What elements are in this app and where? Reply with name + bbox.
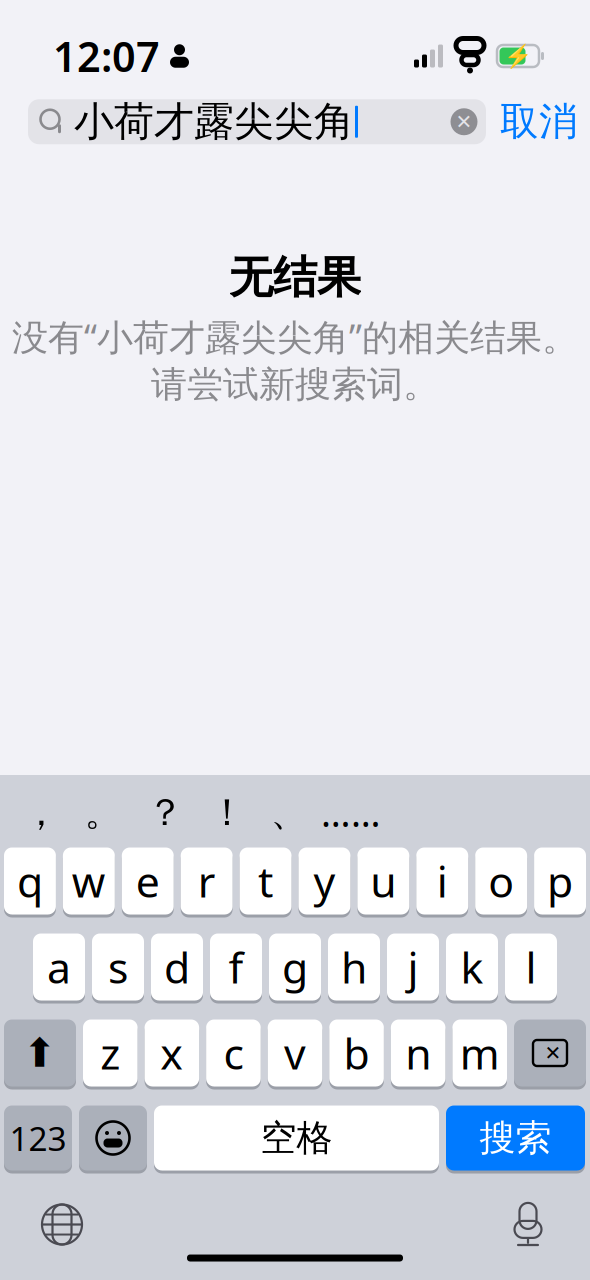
staticText: x bbox=[160, 1025, 183, 1081]
staticText: d bbox=[164, 939, 190, 995]
staticText: 无结果 bbox=[229, 250, 361, 304]
staticText: s bbox=[108, 939, 128, 995]
button[interactable]: 123 bbox=[4, 1105, 72, 1173]
button[interactable]: m bbox=[452, 1019, 507, 1089]
button[interactable]: p bbox=[534, 847, 586, 917]
button[interactable]: Clear text bbox=[442, 100, 486, 144]
staticText: w bbox=[72, 853, 106, 909]
staticText: 小荷才露尖尖角 bbox=[74, 97, 354, 146]
staticText: 空格 bbox=[260, 1116, 332, 1160]
staticText: ⚡ bbox=[504, 43, 532, 69]
button[interactable]: b bbox=[329, 1019, 384, 1089]
staticText: j bbox=[407, 939, 418, 995]
button[interactable]: z bbox=[83, 1019, 138, 1089]
button[interactable]: f bbox=[210, 933, 262, 1003]
button[interactable]: r bbox=[181, 847, 233, 917]
staticText: z bbox=[100, 1025, 120, 1081]
button[interactable]: k bbox=[446, 933, 498, 1003]
staticText: e bbox=[136, 853, 160, 909]
staticText: 没有“小荷才露尖尖角”的相关结果。 bbox=[12, 312, 578, 360]
staticText: 123 bbox=[9, 1116, 66, 1160]
button[interactable]: ！ bbox=[196, 783, 258, 841]
button[interactable]: e bbox=[122, 847, 174, 917]
staticText: l bbox=[525, 939, 536, 995]
button[interactable]: 取消 bbox=[500, 98, 578, 145]
button[interactable]: x bbox=[145, 1019, 199, 1089]
button[interactable]: 搜索 bbox=[446, 1105, 585, 1173]
button[interactable]: 。 bbox=[72, 783, 134, 841]
staticText: o bbox=[488, 853, 514, 909]
staticText: ！ bbox=[208, 790, 245, 835]
staticText: m bbox=[460, 1025, 500, 1081]
button[interactable]: …… bbox=[320, 783, 382, 841]
button[interactable]: i bbox=[416, 847, 468, 917]
button[interactable]: Shift bbox=[4, 1019, 76, 1089]
button[interactable]: o bbox=[475, 847, 527, 917]
button[interactable]: ？ bbox=[134, 783, 196, 841]
button[interactable]: s bbox=[92, 933, 144, 1003]
staticText: 取消 bbox=[500, 98, 578, 145]
staticText: ✕ bbox=[455, 110, 472, 133]
staticText: …… bbox=[321, 788, 381, 837]
button[interactable]: ， bbox=[10, 783, 72, 841]
button[interactable]: Emoji bbox=[79, 1105, 147, 1173]
staticText: u bbox=[370, 853, 396, 909]
button[interactable]: u bbox=[357, 847, 409, 917]
staticText: 。 bbox=[84, 790, 121, 835]
staticText: i bbox=[437, 853, 448, 909]
staticText: ， bbox=[22, 790, 59, 835]
button[interactable]: Dictate bbox=[493, 1195, 563, 1253]
staticText: ⬆ bbox=[23, 1030, 57, 1076]
staticText: 、 bbox=[270, 790, 307, 835]
staticText: ？ bbox=[146, 790, 183, 835]
button[interactable]: Next keyboard bbox=[27, 1195, 97, 1253]
button[interactable]: g bbox=[269, 933, 321, 1003]
button[interactable]: n bbox=[391, 1019, 445, 1089]
staticText: r bbox=[198, 853, 216, 909]
button[interactable]: 、 bbox=[258, 783, 320, 841]
staticText: 搜索 bbox=[479, 1116, 551, 1160]
button[interactable]: d bbox=[151, 933, 203, 1003]
staticText: q bbox=[17, 853, 43, 909]
button[interactable]: j bbox=[387, 933, 439, 1003]
staticText: ✕ bbox=[544, 1042, 561, 1064]
button[interactable]: t bbox=[240, 847, 291, 917]
staticText: 12:07 bbox=[53, 29, 160, 83]
staticText: b bbox=[344, 1025, 370, 1081]
button[interactable]: q bbox=[4, 847, 56, 917]
staticText: g bbox=[282, 939, 308, 995]
staticText: c bbox=[223, 1025, 243, 1081]
button[interactable]: c bbox=[206, 1019, 261, 1089]
staticText: 请尝试新搜索词。 bbox=[151, 362, 439, 406]
button[interactable]: v bbox=[268, 1019, 322, 1089]
staticText: k bbox=[460, 939, 483, 995]
button[interactable]: y bbox=[298, 847, 350, 917]
staticText: f bbox=[228, 939, 243, 995]
button[interactable]: h bbox=[328, 933, 380, 1003]
staticText: t bbox=[258, 853, 273, 909]
staticText: y bbox=[313, 853, 335, 909]
button[interactable]: Delete bbox=[514, 1019, 586, 1089]
staticText: a bbox=[47, 939, 71, 995]
staticText: v bbox=[284, 1025, 306, 1081]
button[interactable]: w bbox=[63, 847, 115, 917]
button[interactable]: a bbox=[33, 933, 85, 1003]
button[interactable]: 空格 bbox=[154, 1105, 439, 1173]
staticText: p bbox=[547, 853, 573, 909]
button[interactable]: l bbox=[505, 933, 557, 1003]
staticText: n bbox=[405, 1025, 431, 1081]
staticText: h bbox=[341, 939, 367, 995]
